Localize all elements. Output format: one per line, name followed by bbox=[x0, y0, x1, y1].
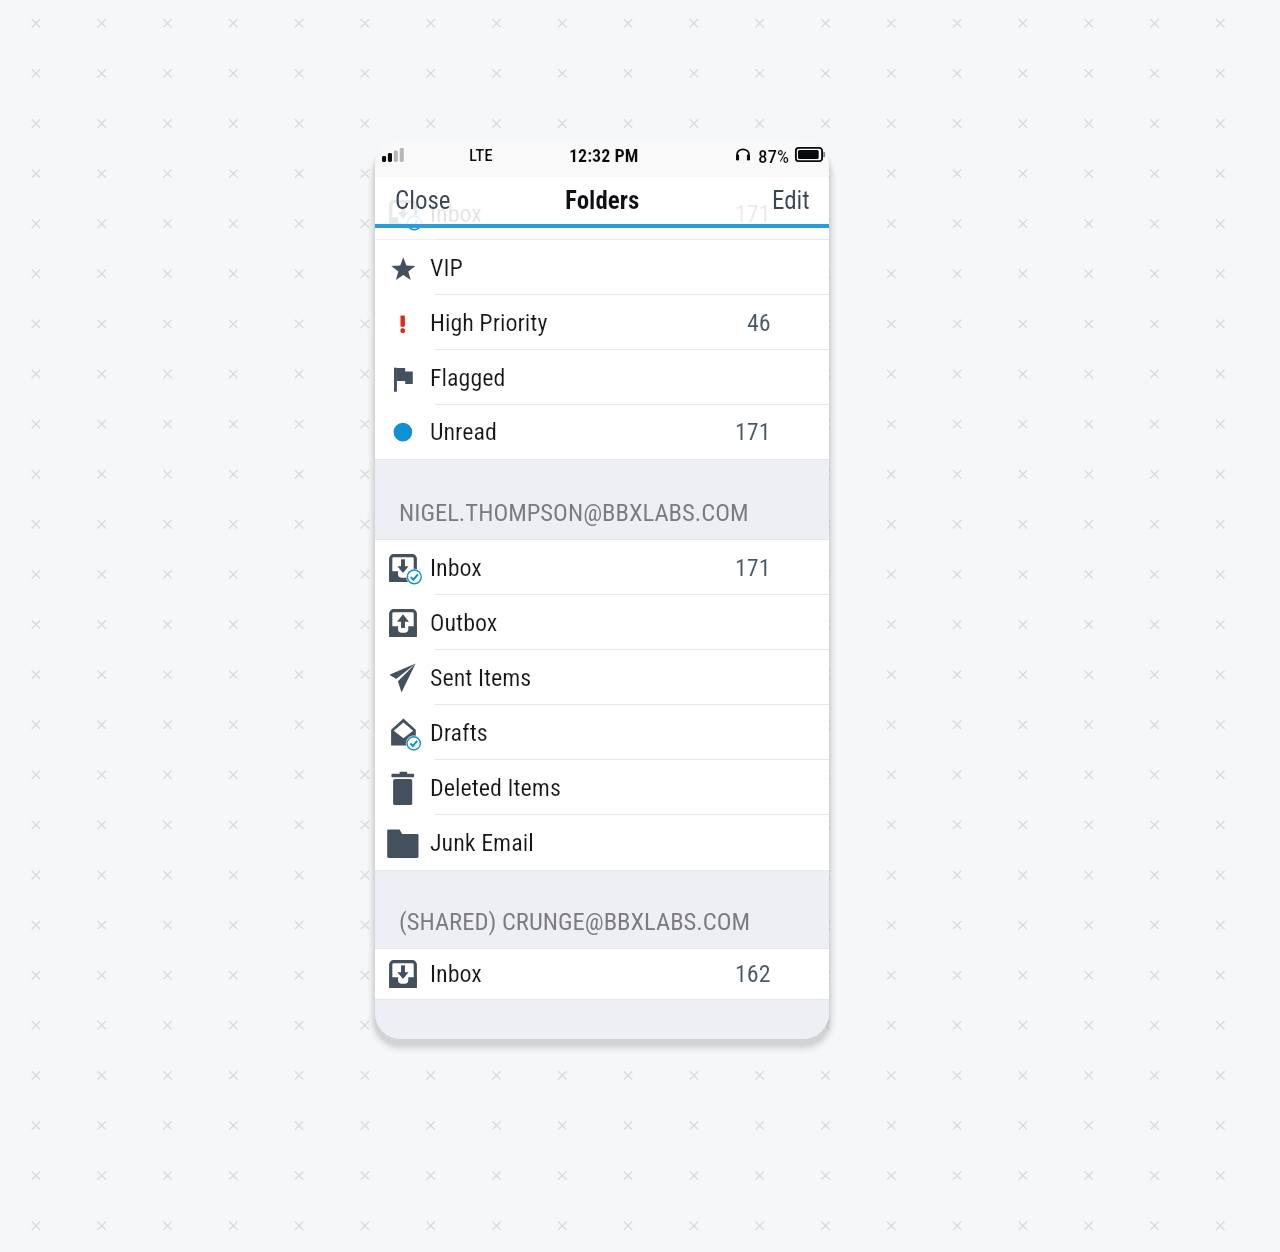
button[interactable]: Unread bbox=[375, 405, 829, 459]
button[interactable]: Deleted Items bbox=[375, 760, 829, 815]
staticText: 171 bbox=[735, 554, 771, 582]
button[interactable]: Drafts bbox=[375, 705, 829, 760]
staticText: 171 bbox=[735, 200, 771, 228]
staticText: High Priority bbox=[430, 309, 548, 337]
staticText: VIP bbox=[430, 254, 463, 282]
staticText: 162 bbox=[735, 960, 771, 988]
button[interactable]: Close bbox=[388, 180, 458, 221]
staticText: Inbox bbox=[430, 200, 482, 228]
staticText: Inbox bbox=[430, 554, 482, 582]
button[interactable]: Sent Items bbox=[375, 650, 829, 705]
staticText: 171 bbox=[735, 418, 771, 446]
button[interactable]: Inbox bbox=[375, 540, 829, 595]
staticText: Edit bbox=[772, 186, 810, 215]
staticText: Outbox bbox=[430, 609, 498, 637]
staticText: LTE bbox=[469, 145, 493, 165]
staticText: Unread bbox=[430, 418, 497, 446]
staticText: 46 bbox=[747, 309, 771, 337]
staticText: Close bbox=[395, 186, 451, 215]
staticText: 87% bbox=[758, 145, 790, 167]
staticText: 12:32 PM bbox=[569, 145, 639, 166]
button[interactable]: Flagged bbox=[375, 350, 829, 405]
staticText: NIGEL.THOMPSON@BBXLABS.COM bbox=[399, 498, 749, 527]
staticText: (SHARED) CRUNGE@BBXLABS.COM bbox=[399, 907, 751, 936]
staticText: Inbox bbox=[430, 960, 482, 988]
button[interactable]: Inbox bbox=[375, 949, 829, 999]
staticText: Flagged bbox=[430, 364, 506, 392]
button[interactable]: Junk Email bbox=[375, 815, 829, 870]
staticText: Drafts bbox=[430, 719, 488, 747]
button[interactable]: High Priority bbox=[375, 295, 829, 350]
button[interactable]: VIP bbox=[375, 240, 829, 295]
button[interactable]: Edit bbox=[765, 180, 817, 221]
staticText: Folders bbox=[565, 186, 640, 215]
staticText: Sent Items bbox=[430, 664, 532, 692]
staticText: Deleted Items bbox=[430, 774, 561, 802]
staticText: Junk Email bbox=[430, 829, 534, 857]
button[interactable]: Outbox bbox=[375, 595, 829, 650]
